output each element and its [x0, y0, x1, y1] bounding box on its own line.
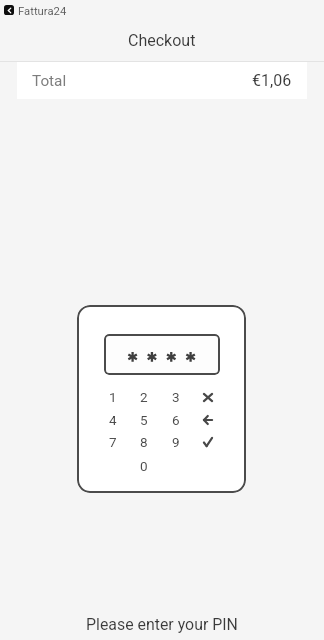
button[interactable]: 9	[163, 432, 189, 452]
staticText: 5	[140, 412, 148, 428]
button[interactable]: 5	[131, 410, 157, 430]
button[interactable]: Back to Fattura24	[4, 5, 67, 15]
staticText: 8	[140, 434, 148, 450]
button[interactable]: Total	[17, 62, 307, 99]
button[interactable]: 4	[100, 410, 126, 430]
staticText: Checkout	[128, 31, 196, 50]
staticText: 2	[140, 389, 148, 405]
button[interactable]: 3	[163, 387, 189, 407]
button[interactable]: Backspace	[195, 410, 221, 430]
staticText: Fattura24	[18, 5, 67, 15]
staticText: 1	[109, 389, 117, 405]
button[interactable]: 6	[163, 410, 189, 430]
staticText: 3	[172, 389, 180, 405]
staticText: 9	[172, 434, 180, 450]
button[interactable]: 7	[100, 432, 126, 452]
button[interactable]: 8	[131, 432, 157, 452]
staticText: €1,06	[252, 71, 292, 90]
staticText: 4	[109, 412, 117, 428]
button[interactable]: 0	[131, 456, 157, 476]
staticText: Total	[32, 72, 67, 90]
button[interactable]: Cancel	[195, 387, 221, 407]
staticText: 0	[140, 458, 148, 474]
button[interactable]: 1	[100, 387, 126, 407]
staticText: 6	[172, 412, 180, 428]
button[interactable]: Confirm	[195, 432, 221, 452]
staticText: Please enter your PIN	[86, 615, 238, 634]
button[interactable]: 2	[131, 387, 157, 407]
staticText: 7	[109, 434, 117, 450]
